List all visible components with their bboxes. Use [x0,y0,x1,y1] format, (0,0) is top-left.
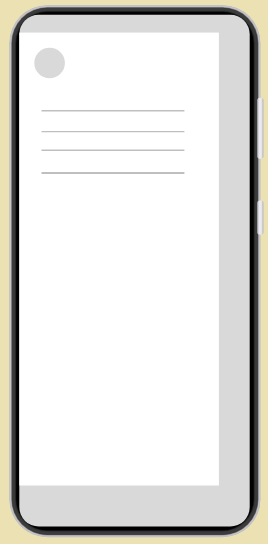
button[interactable]: Starred [19,122,219,141]
button[interactable]: Power [257,201,263,235]
button[interactable]: Phone screen [19,486,249,527]
button[interactable]: Inbox [19,101,219,122]
button[interactable]: Drafts [19,141,219,164]
button[interactable]: Settings [19,164,219,185]
button[interactable]: Account avatar [34,48,65,79]
button[interactable]: Volume [257,98,263,159]
